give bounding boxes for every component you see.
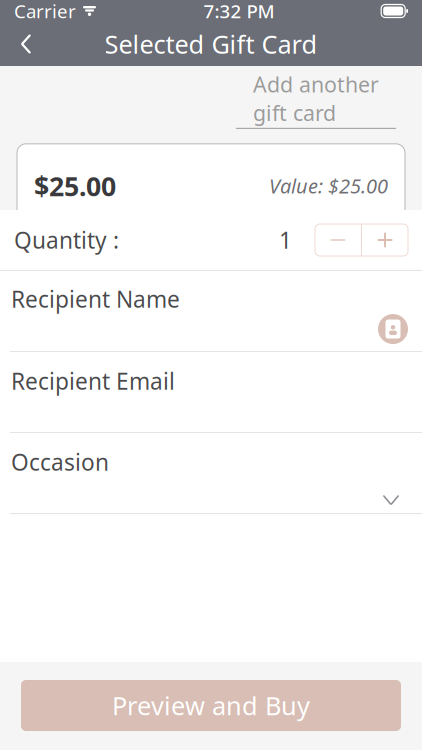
staticText: Add another gift card bbox=[253, 70, 379, 127]
button[interactable]: Increase quantity bbox=[362, 224, 408, 256]
button[interactable]: Occasion bbox=[0, 433, 422, 513]
staticText: 1 bbox=[279, 225, 292, 255]
staticText: Occasion bbox=[11, 447, 109, 477]
staticText: Selected Gift Card bbox=[104, 27, 317, 61]
button[interactable]: Back bbox=[0, 22, 52, 66]
button[interactable]: Add another gift card bbox=[236, 70, 396, 129]
staticText: Quantity : bbox=[14, 225, 119, 255]
staticText: 7:32 PM bbox=[204, 0, 275, 23]
staticText: Value: $25.00 bbox=[269, 173, 388, 199]
staticText: Preview and Buy bbox=[112, 689, 310, 722]
staticText: $25.00 bbox=[34, 168, 116, 203]
button[interactable]: Decrease quantity bbox=[315, 224, 361, 256]
button[interactable]: Preview and Buy bbox=[21, 680, 401, 731]
staticText: Recipient Email bbox=[11, 366, 175, 396]
staticText: Carrier bbox=[14, 0, 76, 23]
button[interactable]: Recipient Email bbox=[0, 352, 422, 432]
staticText: Recipient Name bbox=[11, 284, 180, 314]
button[interactable]: Recipient Name bbox=[0, 271, 422, 351]
